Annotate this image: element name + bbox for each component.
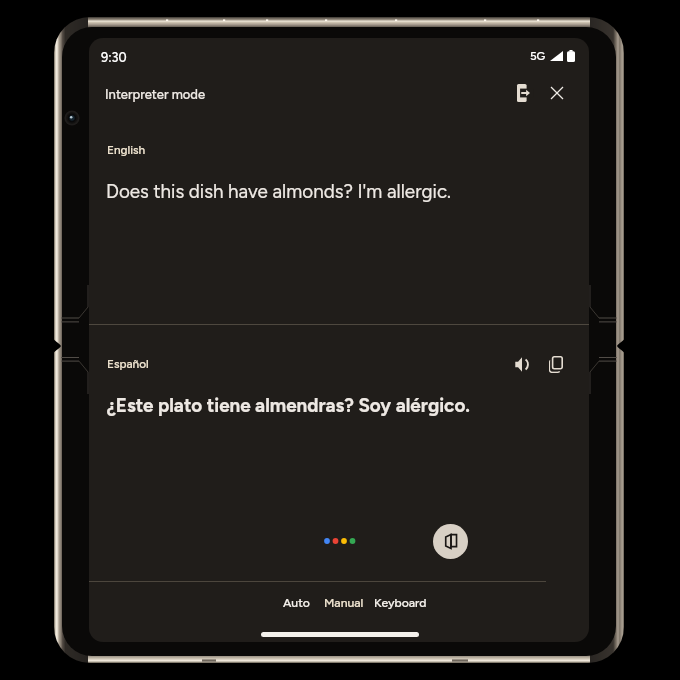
button[interactable]: Close — [544, 80, 570, 106]
button[interactable]: Manual — [324, 595, 364, 610]
staticText: 9:30 — [101, 50, 127, 65]
button[interactable]: Copy translation — [543, 351, 569, 377]
staticText: Auto — [283, 595, 310, 610]
staticText: Manual — [324, 595, 364, 610]
button[interactable]: Interpreter mode — [105, 87, 206, 103]
button[interactable]: Español — [107, 357, 149, 371]
staticText: 5G — [530, 49, 546, 63]
button[interactable]: Play translation — [509, 351, 535, 377]
button[interactable]: Keyboard — [374, 595, 427, 610]
staticText: English — [107, 143, 146, 157]
button[interactable]: English — [107, 143, 146, 157]
button[interactable]: Auto — [283, 595, 310, 610]
button[interactable]: Continue on phone — [510, 80, 536, 106]
staticText: ¿Este plato tiene almendras? Soy alérgic… — [107, 394, 470, 417]
staticText: Interpreter mode — [105, 87, 206, 103]
staticText: Keyboard — [374, 595, 427, 610]
button[interactable]: Switch to fold view — [433, 524, 468, 559]
staticText: Español — [107, 357, 149, 371]
staticText: Does this dish have almonds? I'm allergi… — [106, 180, 451, 203]
